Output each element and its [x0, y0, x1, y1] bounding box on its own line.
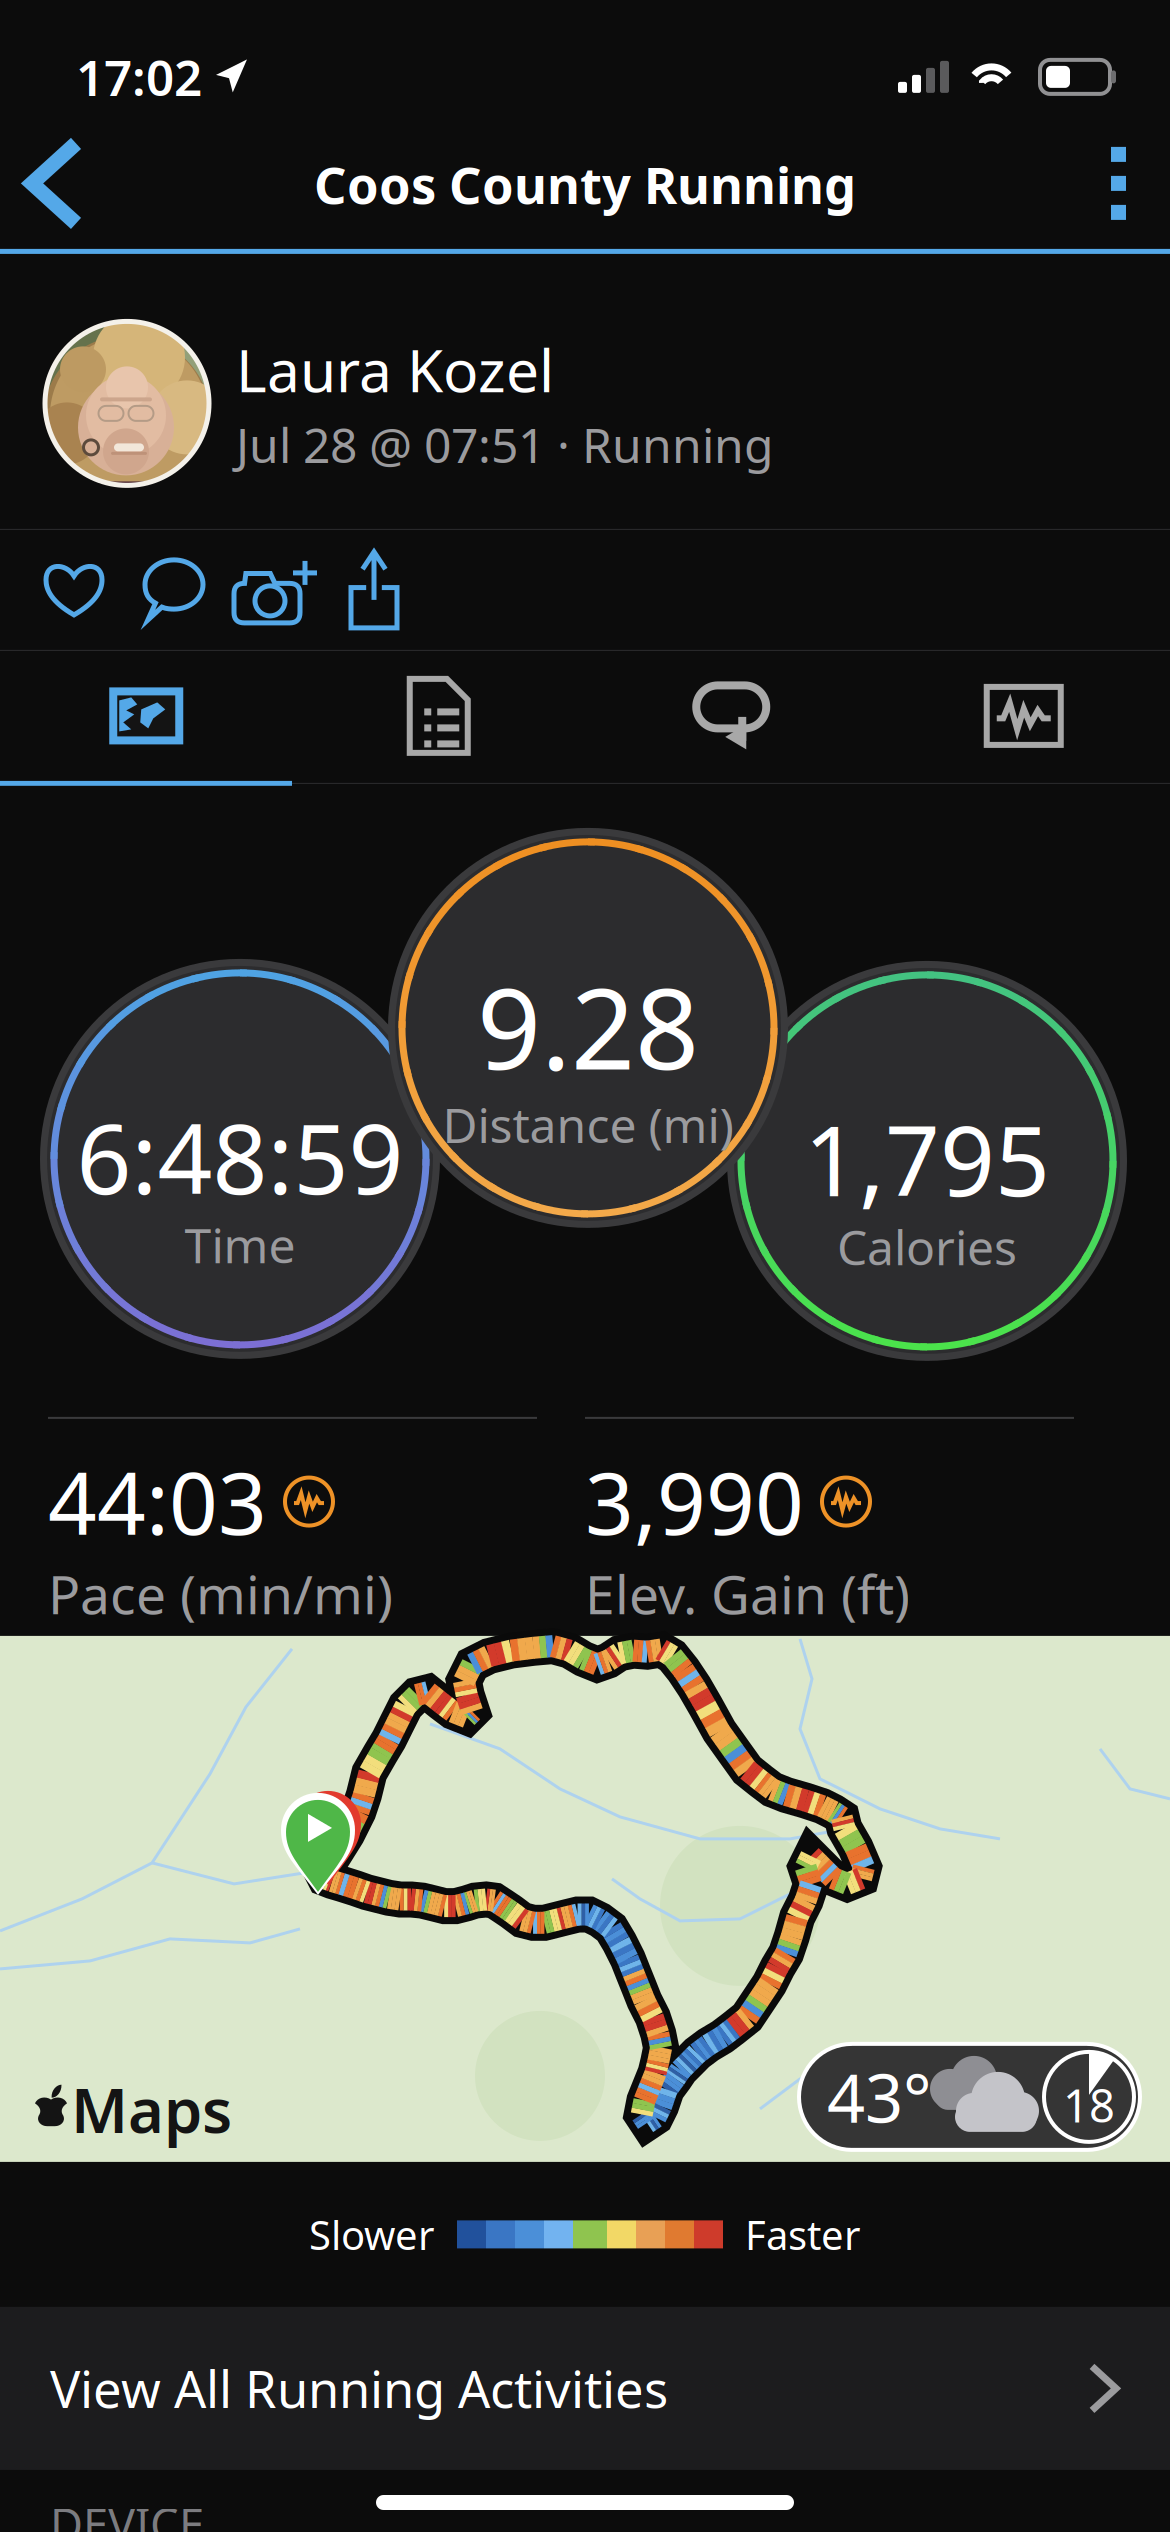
- staticText: 17:02: [76, 44, 202, 110]
- button[interactable]: Back: [0, 118, 110, 248]
- staticText: Slower: [309, 2208, 435, 2261]
- button[interactable]: Add photo: [224, 530, 324, 650]
- staticText: Jul 28 @ 07:51 · Running: [236, 412, 774, 476]
- staticText: Time: [184, 1213, 295, 1276]
- button[interactable]: Share: [324, 530, 424, 650]
- staticText: 6:48:59: [76, 1093, 403, 1221]
- button[interactable]: Charts: [877, 651, 1170, 781]
- staticText: 1,795: [804, 1095, 1050, 1223]
- staticText: Faster: [745, 2208, 861, 2261]
- staticText: Maps: [71, 2068, 232, 2150]
- staticText: 9.28: [477, 952, 699, 1100]
- button[interactable]: Map: [0, 651, 292, 781]
- staticText: Laura Kozel: [236, 331, 554, 408]
- staticText: Elev. Gain (ft): [585, 1558, 910, 1629]
- button[interactable]: Like: [24, 530, 124, 650]
- staticText: View All Running Activities: [50, 2355, 668, 2422]
- button[interactable]: Comment: [124, 530, 224, 650]
- button[interactable]: Laps: [585, 651, 877, 781]
- staticText: 43°: [827, 2053, 932, 2141]
- button[interactable]: View All Running Activities: [0, 2307, 1170, 2470]
- staticText: Calories: [837, 1215, 1017, 1278]
- staticText: DEVICE: [50, 2494, 204, 2532]
- staticText: 44:03: [48, 1445, 267, 1558]
- staticText: Pace (min/mi): [48, 1558, 393, 1629]
- staticText: Distance (mi): [442, 1092, 733, 1156]
- staticText: 3,990: [585, 1445, 804, 1558]
- button[interactable]: More options: [1067, 125, 1170, 242]
- button[interactable]: Details: [292, 651, 585, 781]
- staticText: Coos County Running: [314, 151, 856, 218]
- staticText: 18: [1063, 2075, 1115, 2135]
